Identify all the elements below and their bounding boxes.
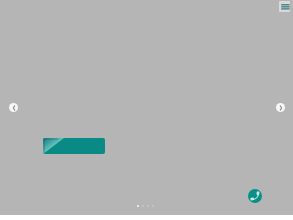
button[interactable]: Call (248, 189, 262, 203)
button[interactable] (43, 138, 105, 154)
button[interactable]: Next (276, 103, 285, 112)
button[interactable]: Previous (9, 103, 18, 112)
button[interactable]: Menu (279, 1, 290, 12)
